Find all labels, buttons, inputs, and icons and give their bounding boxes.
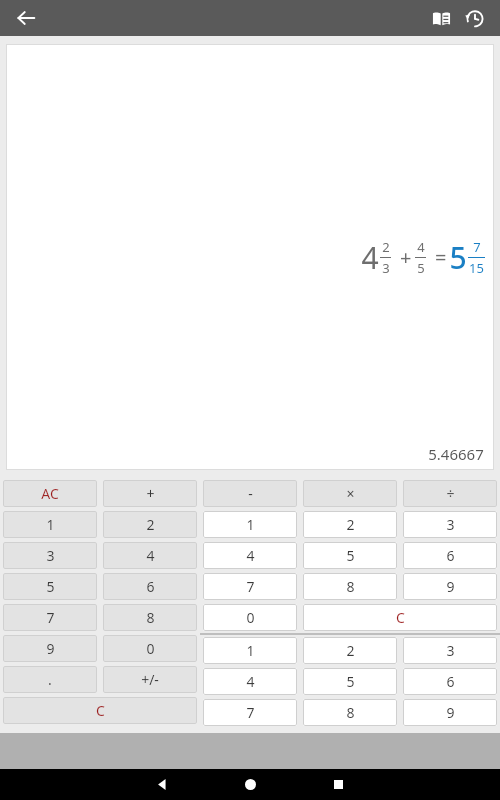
button[interactable]: 3 — [403, 637, 497, 664]
button[interactable]: C — [3, 697, 197, 724]
button[interactable]: 4 — [103, 542, 197, 569]
staticText: 4 — [246, 546, 255, 565]
button[interactable]: . — [3, 666, 97, 693]
button[interactable]: 1 — [203, 511, 297, 538]
button[interactable]: Recent apps — [316, 769, 360, 800]
button[interactable]: 4 — [203, 542, 297, 569]
staticText: ÷ — [446, 484, 455, 503]
button[interactable]: ÷ — [403, 480, 497, 507]
button[interactable]: History — [458, 1, 492, 35]
staticText: 5 — [346, 546, 355, 565]
button[interactable]: - — [203, 480, 297, 507]
staticText: 3 — [46, 546, 55, 565]
staticText: . — [48, 670, 52, 689]
button[interactable]: 4 — [203, 668, 297, 695]
staticText: 4 — [417, 238, 425, 256]
button[interactable]: 1 — [3, 511, 97, 538]
button[interactable]: 9 — [403, 699, 497, 726]
button[interactable]: 7 — [203, 573, 297, 600]
staticText: 5 — [46, 577, 55, 596]
staticText: C — [396, 608, 405, 627]
staticText: 15 — [469, 259, 484, 277]
staticText: 8 — [346, 577, 355, 596]
button[interactable]: 3 — [403, 511, 497, 538]
button[interactable]: 9 — [3, 635, 97, 662]
staticText: 5.46667 — [428, 444, 484, 464]
staticText: 5 — [449, 237, 467, 278]
staticText: 3 — [382, 259, 390, 277]
staticText: 6 — [446, 672, 455, 691]
button[interactable]: 6 — [403, 668, 497, 695]
staticText: +/- — [141, 670, 159, 689]
button[interactable]: 5 — [303, 542, 397, 569]
staticText: = — [427, 244, 449, 271]
staticText: 1 — [246, 641, 255, 660]
staticText: 0 — [246, 608, 255, 627]
staticText: - — [248, 484, 253, 503]
staticText: 2 — [382, 238, 390, 256]
button[interactable]: 8 — [103, 604, 197, 631]
button[interactable]: 2 — [303, 637, 397, 664]
staticText: 6 — [146, 577, 155, 596]
staticText: C — [96, 701, 105, 720]
button[interactable]: 8 — [303, 573, 397, 600]
staticText: 8 — [146, 608, 155, 627]
staticText: 2 — [346, 515, 355, 534]
staticText: 9 — [446, 703, 455, 722]
button[interactable]: 0 — [103, 635, 197, 662]
button[interactable]: + — [103, 480, 197, 507]
staticText: + — [392, 244, 414, 271]
staticText: 4 — [361, 237, 379, 278]
staticText: 1 — [46, 515, 55, 534]
staticText: 2 — [346, 641, 355, 660]
staticText: + — [146, 484, 155, 503]
button[interactable]: 7 — [3, 604, 97, 631]
button[interactable]: 5 — [303, 668, 397, 695]
staticText: 4 — [146, 546, 155, 565]
button[interactable]: × — [303, 480, 397, 507]
staticText: × — [346, 484, 355, 503]
button[interactable]: 2 — [303, 511, 397, 538]
staticText: 4 — [246, 672, 255, 691]
staticText: 9 — [46, 639, 55, 658]
staticText: 7 — [246, 577, 255, 596]
staticText: 0 — [146, 639, 155, 658]
button[interactable]: Back — [10, 2, 42, 34]
button[interactable]: 1 — [203, 637, 297, 664]
button[interactable]: 7 — [203, 699, 297, 726]
staticText: 5 — [417, 259, 425, 277]
button[interactable]: 2 — [103, 511, 197, 538]
staticText: 6 — [446, 546, 455, 565]
staticText: 2 — [146, 515, 155, 534]
staticText: 7 — [473, 238, 481, 256]
staticText: 8 — [346, 703, 355, 722]
staticText: 7 — [246, 703, 255, 722]
button[interactable]: 6 — [103, 573, 197, 600]
button[interactable]: Home — [228, 769, 272, 800]
button[interactable]: Back — [140, 769, 184, 800]
button[interactable]: 6 — [403, 542, 497, 569]
button[interactable]: 3 — [3, 542, 97, 569]
staticText: 9 — [446, 577, 455, 596]
button[interactable]: 5 — [3, 573, 97, 600]
button[interactable]: 8 — [303, 699, 397, 726]
button[interactable]: Manual — [424, 1, 458, 35]
button[interactable]: +/- — [103, 666, 197, 693]
staticText: 3 — [446, 515, 455, 534]
button[interactable]: 0 — [203, 604, 297, 631]
button[interactable]: C — [303, 604, 497, 631]
staticText: 7 — [46, 608, 55, 627]
staticText: 3 — [446, 641, 455, 660]
staticText: AC — [41, 484, 59, 503]
button[interactable]: 9 — [403, 573, 497, 600]
button[interactable]: AC — [3, 480, 97, 507]
staticText: 5 — [346, 672, 355, 691]
staticText: 1 — [246, 515, 255, 534]
